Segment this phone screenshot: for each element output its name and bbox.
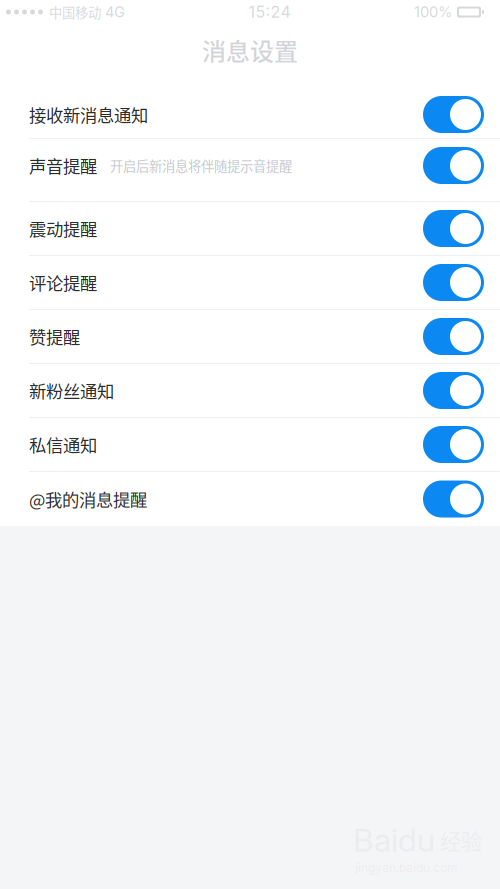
button[interactable]: 评论提醒: [0, 256, 500, 310]
staticText: 经验: [440, 825, 482, 856]
button[interactable]: 私信通知: [0, 418, 500, 472]
staticText: 15:24: [248, 2, 290, 22]
staticText: Baidu: [353, 821, 435, 859]
staticText: 声音提醒: [29, 153, 97, 178]
button[interactable]: 声音提醒: [0, 139, 500, 202]
staticText: 新粉丝通知: [29, 378, 114, 403]
staticText: 接收新消息通知: [29, 102, 148, 127]
staticText: 开启后新消息将伴随提示音提醒: [110, 156, 292, 175]
staticText: @我的消息提醒: [29, 486, 147, 512]
staticText: 私信通知: [29, 432, 97, 457]
staticText: 4G: [105, 3, 125, 21]
staticText: 消息设置: [202, 33, 298, 67]
button[interactable]: 新粉丝通知: [0, 364, 500, 418]
button[interactable]: 接收新消息通知: [0, 91, 500, 139]
button[interactable]: @我的消息提醒: [0, 472, 500, 526]
button[interactable]: 赞提醒: [0, 310, 500, 364]
staticText: 震动提醒: [29, 216, 97, 241]
button[interactable]: 震动提醒: [0, 202, 500, 256]
staticText: 赞提醒: [29, 324, 80, 349]
staticText: 100%: [414, 3, 452, 21]
staticText: 中国移动: [49, 2, 101, 22]
staticText: 评论提醒: [29, 270, 97, 295]
